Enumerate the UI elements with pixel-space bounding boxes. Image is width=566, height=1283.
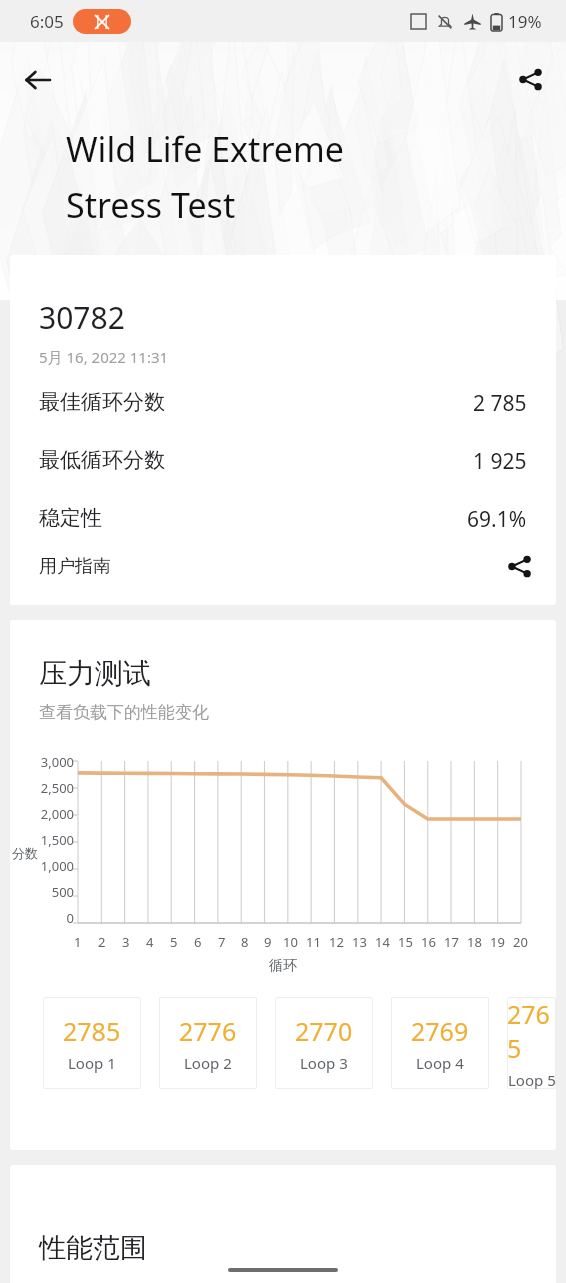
staticText: 10 bbox=[283, 933, 298, 951]
staticText: 循环 bbox=[269, 957, 297, 975]
staticText: 9 bbox=[264, 933, 272, 951]
staticText: 6 bbox=[194, 933, 202, 951]
staticText: 14 bbox=[375, 933, 390, 951]
staticText: 5 bbox=[170, 933, 178, 951]
button[interactable]: 2770 bbox=[275, 997, 373, 1089]
button[interactable]: 2776 bbox=[159, 997, 257, 1089]
staticText: 18 bbox=[467, 933, 482, 951]
staticText: 3 bbox=[122, 933, 130, 951]
staticText: 6:05 bbox=[30, 10, 64, 33]
staticText: Loop 1 bbox=[68, 1053, 116, 1073]
staticText: 2765 bbox=[507, 997, 556, 1065]
staticText: 20 bbox=[513, 933, 528, 951]
button[interactable]: 性能范围 bbox=[10, 1165, 556, 1283]
staticText: 稳定性 bbox=[39, 505, 102, 531]
staticText: Loop 3 bbox=[300, 1053, 348, 1073]
staticText: 500 bbox=[28, 883, 74, 901]
staticText: 8 bbox=[241, 933, 249, 951]
button[interactable]: Share bbox=[506, 55, 554, 103]
button[interactable]: 用户指南 bbox=[10, 527, 556, 605]
staticText: 2,500 bbox=[28, 779, 74, 797]
staticText: 1,000 bbox=[28, 857, 74, 875]
staticText: 压力测试 bbox=[39, 656, 151, 691]
staticText: 性能范围 bbox=[39, 1231, 147, 1265]
staticText: 2785 bbox=[63, 1014, 121, 1048]
staticText: 2,000 bbox=[28, 805, 74, 823]
staticText: 2 bbox=[98, 933, 106, 951]
staticText: Stress Test bbox=[66, 182, 236, 228]
staticText: 7 bbox=[218, 933, 226, 951]
staticText: 0 bbox=[28, 909, 74, 927]
staticText: 13 bbox=[352, 933, 367, 951]
staticText: 5月 16, 2022 11:31 bbox=[39, 347, 169, 367]
staticText: 11 bbox=[306, 933, 321, 951]
staticText: Loop 4 bbox=[416, 1053, 464, 1073]
staticText: Loop 5 bbox=[508, 1070, 556, 1089]
staticText: 16 bbox=[421, 933, 436, 951]
staticText: 19 bbox=[490, 933, 505, 951]
staticText: Wild Life Extreme bbox=[66, 126, 344, 172]
staticText: 12 bbox=[329, 933, 344, 951]
staticText: 69.1% bbox=[467, 505, 527, 534]
staticText: 2769 bbox=[411, 1014, 469, 1048]
staticText: 用户指南 bbox=[39, 555, 111, 578]
staticText: 15 bbox=[398, 933, 413, 951]
staticText: Loop 2 bbox=[184, 1053, 232, 1073]
staticText: 分数 bbox=[12, 845, 38, 861]
staticText: 1,500 bbox=[28, 831, 74, 849]
button[interactable]: 2785 bbox=[43, 997, 141, 1089]
staticText: 2776 bbox=[179, 1014, 237, 1048]
staticText: 19% bbox=[508, 10, 542, 33]
staticText: 查看负载下的性能变化 bbox=[39, 702, 209, 723]
staticText: 2770 bbox=[295, 1014, 353, 1048]
staticText: 3,000 bbox=[28, 753, 74, 771]
button[interactable]: 2769 bbox=[391, 997, 489, 1089]
staticText: 4 bbox=[146, 933, 154, 951]
button[interactable]: Back bbox=[14, 56, 62, 104]
staticText: 最佳循环分数 bbox=[39, 389, 165, 415]
button[interactable]: 2765 bbox=[507, 997, 556, 1089]
staticText: 1 925 bbox=[473, 447, 527, 476]
staticText: 30782 bbox=[39, 297, 125, 338]
staticText: 1 bbox=[74, 933, 82, 951]
staticText: 2 785 bbox=[473, 389, 527, 418]
staticText: 最低循环分数 bbox=[39, 447, 165, 473]
staticText: 17 bbox=[444, 933, 459, 951]
